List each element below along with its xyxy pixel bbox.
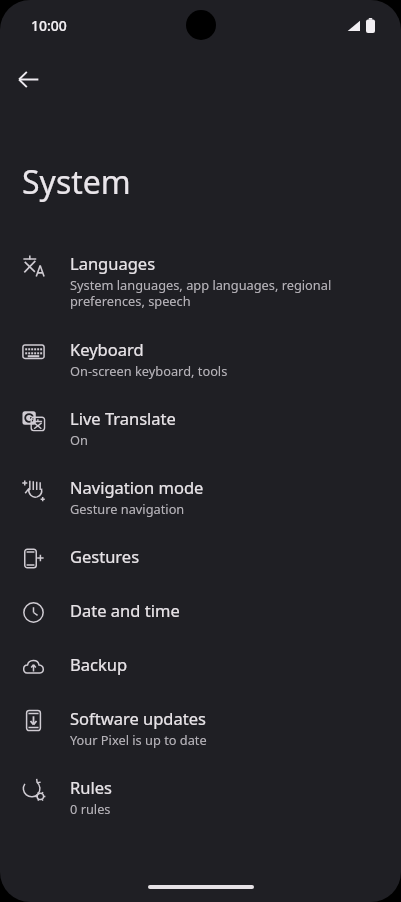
staticText: 0 rules xyxy=(70,800,111,817)
button[interactable]: Date and time xyxy=(0,585,401,639)
button[interactable]: Backup xyxy=(0,639,401,693)
button[interactable]: Languages xyxy=(0,238,401,324)
staticText: On-screen keyboard, tools xyxy=(70,362,228,379)
staticText: Keyboard xyxy=(70,338,144,360)
button[interactable]: Back xyxy=(8,59,48,99)
staticText: Languages xyxy=(70,252,156,274)
button[interactable]: Keyboard xyxy=(0,324,401,393)
staticText: On xyxy=(70,431,88,448)
staticText: Rules xyxy=(70,776,112,798)
staticText: Gestures xyxy=(70,545,140,567)
staticText: Gesture navigation xyxy=(70,500,185,517)
staticText: Software updates xyxy=(70,707,206,729)
staticText: System xyxy=(22,160,131,204)
button[interactable]: Software updates xyxy=(0,693,401,762)
staticText: Your Pixel is up to date xyxy=(70,731,207,748)
staticText: Navigation mode xyxy=(70,476,204,498)
staticText: Backup xyxy=(70,653,128,675)
button[interactable]: Navigation mode xyxy=(0,462,401,531)
staticText: Live Translate xyxy=(70,407,176,429)
button[interactable]: Gestures xyxy=(0,531,401,585)
staticText: System languages, app languages, regiona… xyxy=(70,276,332,310)
button[interactable]: Live Translate xyxy=(0,393,401,462)
staticText: Date and time xyxy=(70,599,180,621)
staticText: 10:00 xyxy=(31,16,67,35)
button[interactable]: Rules xyxy=(0,762,401,831)
